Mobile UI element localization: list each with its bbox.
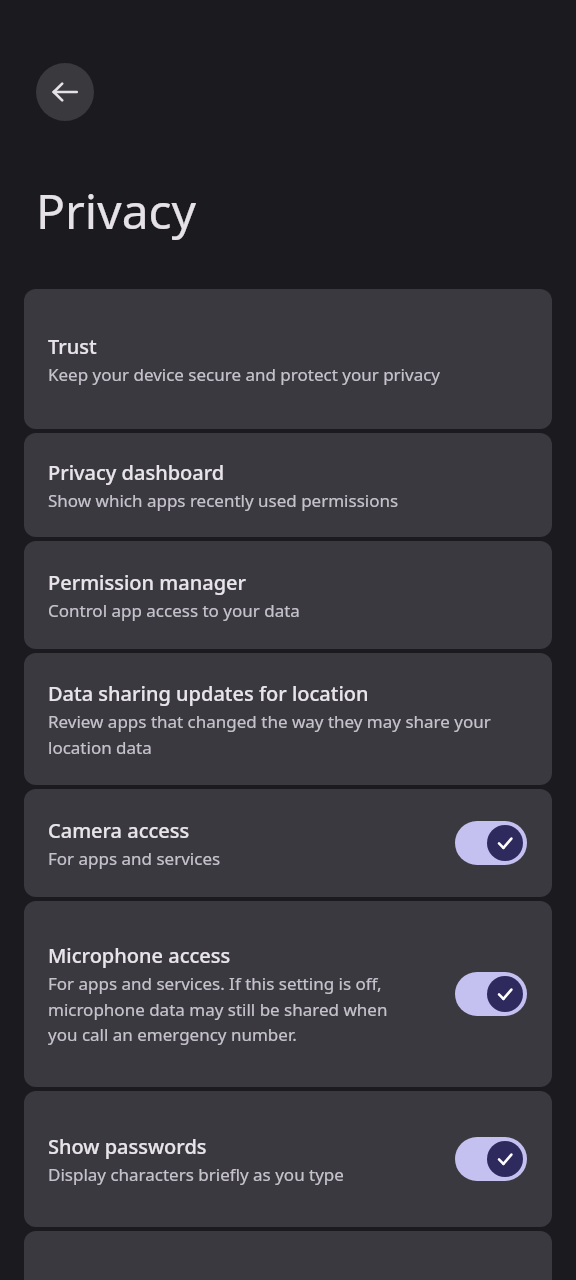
button[interactable]: Back	[36, 63, 94, 121]
staticText: Keep your device secure and protect your…	[48, 363, 441, 386]
button[interactable]: Camera access	[24, 789, 552, 897]
staticText: Show passwords	[48, 1133, 207, 1160]
button[interactable]: Permission manager	[24, 541, 552, 649]
staticText: Privacy	[36, 178, 197, 243]
button[interactable]: Toggle, on	[455, 821, 527, 865]
staticText: Show which apps recently used permission…	[48, 489, 399, 512]
staticText: For apps and services	[48, 847, 221, 870]
staticText: Trust	[48, 333, 97, 360]
staticText: Microphone access	[48, 942, 231, 969]
button[interactable]: Microphone access	[24, 901, 552, 1087]
button[interactable]: Toggle, on	[455, 1137, 527, 1181]
button[interactable]: Trust	[24, 289, 552, 429]
button[interactable]: Privacy dashboard	[24, 433, 552, 537]
staticText: Camera access	[48, 817, 190, 844]
staticText: For apps and services. If this setting i…	[48, 972, 408, 1046]
staticText: Control app access to your data	[48, 599, 300, 622]
button[interactable]: Data sharing updates for location	[24, 653, 552, 785]
staticText: Privacy dashboard	[48, 459, 225, 486]
button[interactable]: Show passwords	[24, 1091, 552, 1227]
staticText: Review apps that changed the way they ma…	[48, 710, 508, 759]
staticText: Permission manager	[48, 569, 246, 596]
staticText: Data sharing updates for location	[48, 680, 369, 707]
button[interactable]: Toggle, on	[455, 972, 527, 1016]
staticText: Display characters briefly as you type	[48, 1163, 344, 1186]
